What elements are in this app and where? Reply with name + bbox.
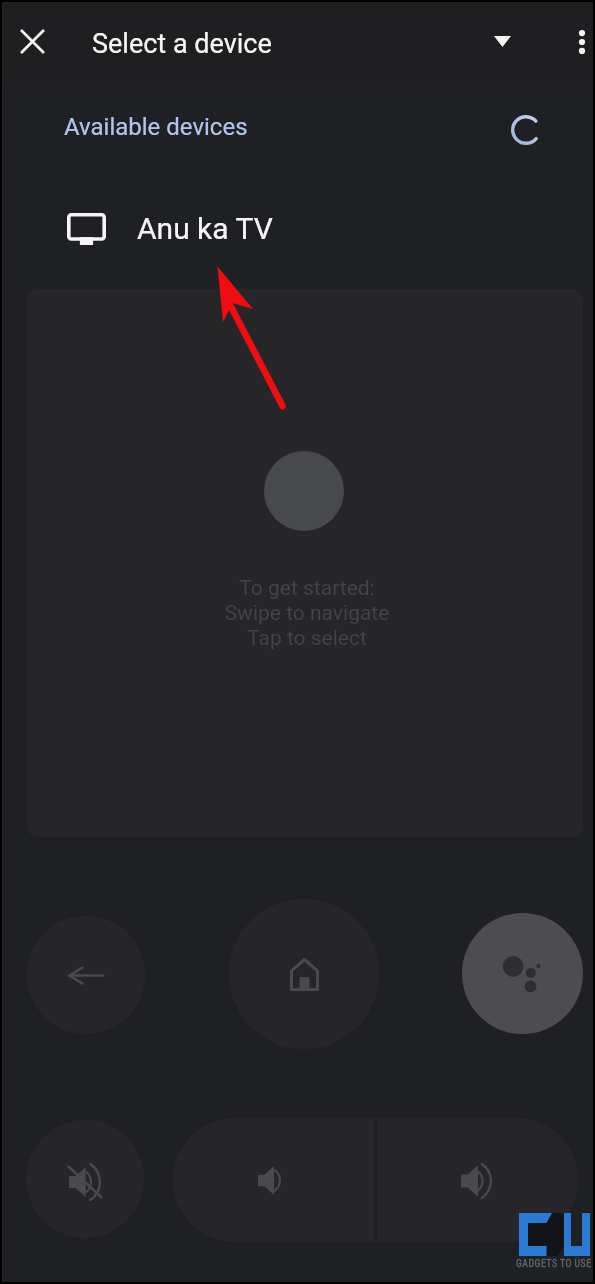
staticText: GADGETS TO USE	[516, 1258, 592, 1270]
button[interactable]: Show more devices	[480, 19, 525, 64]
button[interactable]: Mute	[26, 1120, 144, 1238]
staticText: Anu ka TV	[137, 211, 273, 246]
staticText: To get started: Swipe to navigate Tap to…	[29, 576, 583, 651]
button[interactable]: Anu ka TV	[3, 200, 595, 264]
button[interactable]: Volume up	[377, 1118, 578, 1242]
button[interactable]: Google Assistant	[462, 913, 583, 1034]
button[interactable]: Home	[229, 899, 379, 1049]
staticText: Select a device	[92, 28, 272, 60]
button[interactable]: Back	[27, 916, 145, 1034]
button[interactable]: More options	[557, 20, 595, 68]
button[interactable]: Volume down	[173, 1118, 374, 1242]
button[interactable]: Touchpad	[27, 289, 583, 837]
button[interactable]: Close	[7, 16, 57, 66]
staticText: Available devices	[64, 113, 248, 141]
